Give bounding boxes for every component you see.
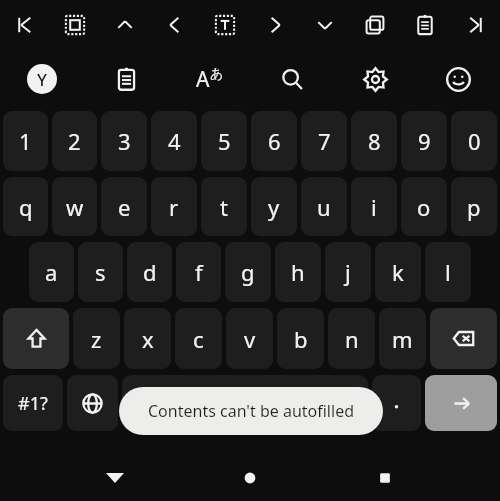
staticText: 4 <box>168 126 181 156</box>
button[interactable]: Recents <box>365 458 405 498</box>
staticText: r <box>169 192 179 222</box>
button[interactable]: Contents can't be autofilled <box>119 387 383 435</box>
staticText: c <box>193 324 204 354</box>
button[interactable]: Select all <box>50 0 100 50</box>
staticText: u <box>317 192 331 222</box>
button[interactable]: r <box>151 177 197 236</box>
staticText: Contents can't be autofilled <box>148 400 354 422</box>
button[interactable]: p <box>451 177 497 236</box>
button[interactable]: o <box>401 177 447 236</box>
button[interactable]: Move left <box>150 0 200 50</box>
button[interactable]: Enter <box>425 375 497 431</box>
staticText: 5 <box>218 126 231 156</box>
button[interactable]: Backspace <box>430 308 497 369</box>
staticText: Y <box>37 68 47 91</box>
button[interactable]: 8 <box>351 111 397 171</box>
staticText: 7 <box>318 126 331 156</box>
button[interactable]: j <box>325 242 371 302</box>
button[interactable]: h <box>275 242 321 302</box>
staticText: i <box>371 192 377 222</box>
button[interactable]: Settings <box>334 50 417 108</box>
button[interactable]: 1 <box>3 111 48 171</box>
staticText: 3 <box>118 126 131 156</box>
staticText: x <box>142 324 154 354</box>
staticText: 9 <box>418 126 431 156</box>
button[interactable]: 4 <box>151 111 197 171</box>
button[interactable]: l <box>425 242 471 302</box>
button[interactable]: 7 <box>301 111 347 171</box>
staticText: m <box>392 324 413 354</box>
staticText: 8 <box>368 126 381 156</box>
staticText: n <box>345 324 359 354</box>
staticText: e <box>118 192 131 222</box>
button[interactable]: Copy <box>350 0 400 50</box>
staticText: あ <box>210 65 224 81</box>
button[interactable]: 0 <box>451 111 497 171</box>
button[interactable]: x <box>124 308 171 369</box>
button[interactable]: 3 <box>101 111 147 171</box>
staticText: l <box>445 257 451 287</box>
staticText: 1 <box>19 126 32 156</box>
staticText: 6 <box>268 126 281 156</box>
button[interactable]: w <box>52 177 97 236</box>
button[interactable]: Search <box>251 50 334 108</box>
staticText: #1? <box>18 391 48 416</box>
button[interactable]: Emoji <box>417 50 500 108</box>
button[interactable]: 5 <box>201 111 247 171</box>
staticText: h <box>291 257 305 287</box>
button[interactable]: d <box>127 242 172 302</box>
button[interactable]: 9 <box>401 111 447 171</box>
button[interactable]: m <box>379 308 426 369</box>
button[interactable]: s <box>78 242 123 302</box>
button[interactable]: c <box>175 308 222 369</box>
button[interactable]: Back <box>95 458 135 498</box>
button[interactable]: Switch language <box>67 375 118 431</box>
button[interactable]: y <box>251 177 297 236</box>
button[interactable]: Clipboard <box>84 50 168 108</box>
staticText: 0 <box>468 126 481 156</box>
button[interactable]: e <box>101 177 147 236</box>
button[interactable]: f <box>176 242 221 302</box>
button[interactable]: Assistant <box>0 50 84 108</box>
staticText: j <box>345 257 351 287</box>
button[interactable]: k <box>375 242 421 302</box>
button[interactable]: q <box>3 177 48 236</box>
button[interactable]: u <box>301 177 347 236</box>
button[interactable]: Select text <box>200 0 250 50</box>
staticText: s <box>95 257 106 287</box>
staticText: v <box>244 324 256 354</box>
staticText: 2 <box>68 126 81 156</box>
button[interactable]: Move to start <box>0 0 50 50</box>
staticText: a <box>45 257 58 287</box>
button[interactable]: 2 <box>52 111 97 171</box>
button[interactable]: Space <box>122 375 368 431</box>
button[interactable]: Move down <box>300 0 350 50</box>
button[interactable]: Translate <box>168 50 251 108</box>
staticText: f <box>195 257 203 287</box>
button[interactable]: z <box>73 308 120 369</box>
button[interactable]: Shift <box>3 308 69 369</box>
button[interactable]: t <box>201 177 247 236</box>
button[interactable]: Home <box>230 458 270 498</box>
button[interactable]: i <box>351 177 397 236</box>
button[interactable]: v <box>226 308 273 369</box>
staticText: y <box>268 192 280 222</box>
button[interactable]: Move right <box>250 0 300 50</box>
staticText: o <box>417 192 431 222</box>
staticText: p <box>467 192 481 222</box>
button[interactable]: b <box>277 308 324 369</box>
button[interactable]: Move to end <box>450 0 500 50</box>
staticText: w <box>66 192 84 222</box>
button[interactable]: a <box>29 242 74 302</box>
button[interactable]: 6 <box>251 111 297 171</box>
button[interactable]: Period <box>372 375 421 431</box>
button[interactable]: g <box>225 242 271 302</box>
button[interactable]: n <box>328 308 375 369</box>
button[interactable]: #1? <box>3 375 63 431</box>
staticText: A <box>196 65 210 94</box>
button[interactable]: Move up <box>100 0 150 50</box>
staticText: b <box>294 324 308 354</box>
button[interactable]: Clipboard <box>400 0 450 50</box>
staticText: t <box>220 192 228 222</box>
staticText: z <box>91 324 102 354</box>
